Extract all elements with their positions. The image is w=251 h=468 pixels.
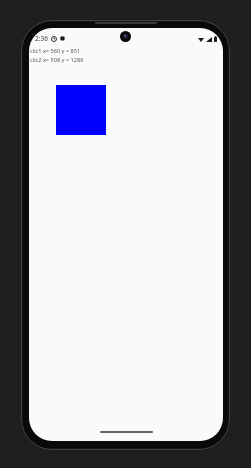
staticText: clic1 x= 560 y = 851 xyxy=(30,47,81,55)
staticText: 2:36 xyxy=(35,34,48,43)
staticText: clic2 x= 508 y = 1286 xyxy=(30,56,84,64)
button[interactable]: Home gesture bar xyxy=(100,431,153,433)
